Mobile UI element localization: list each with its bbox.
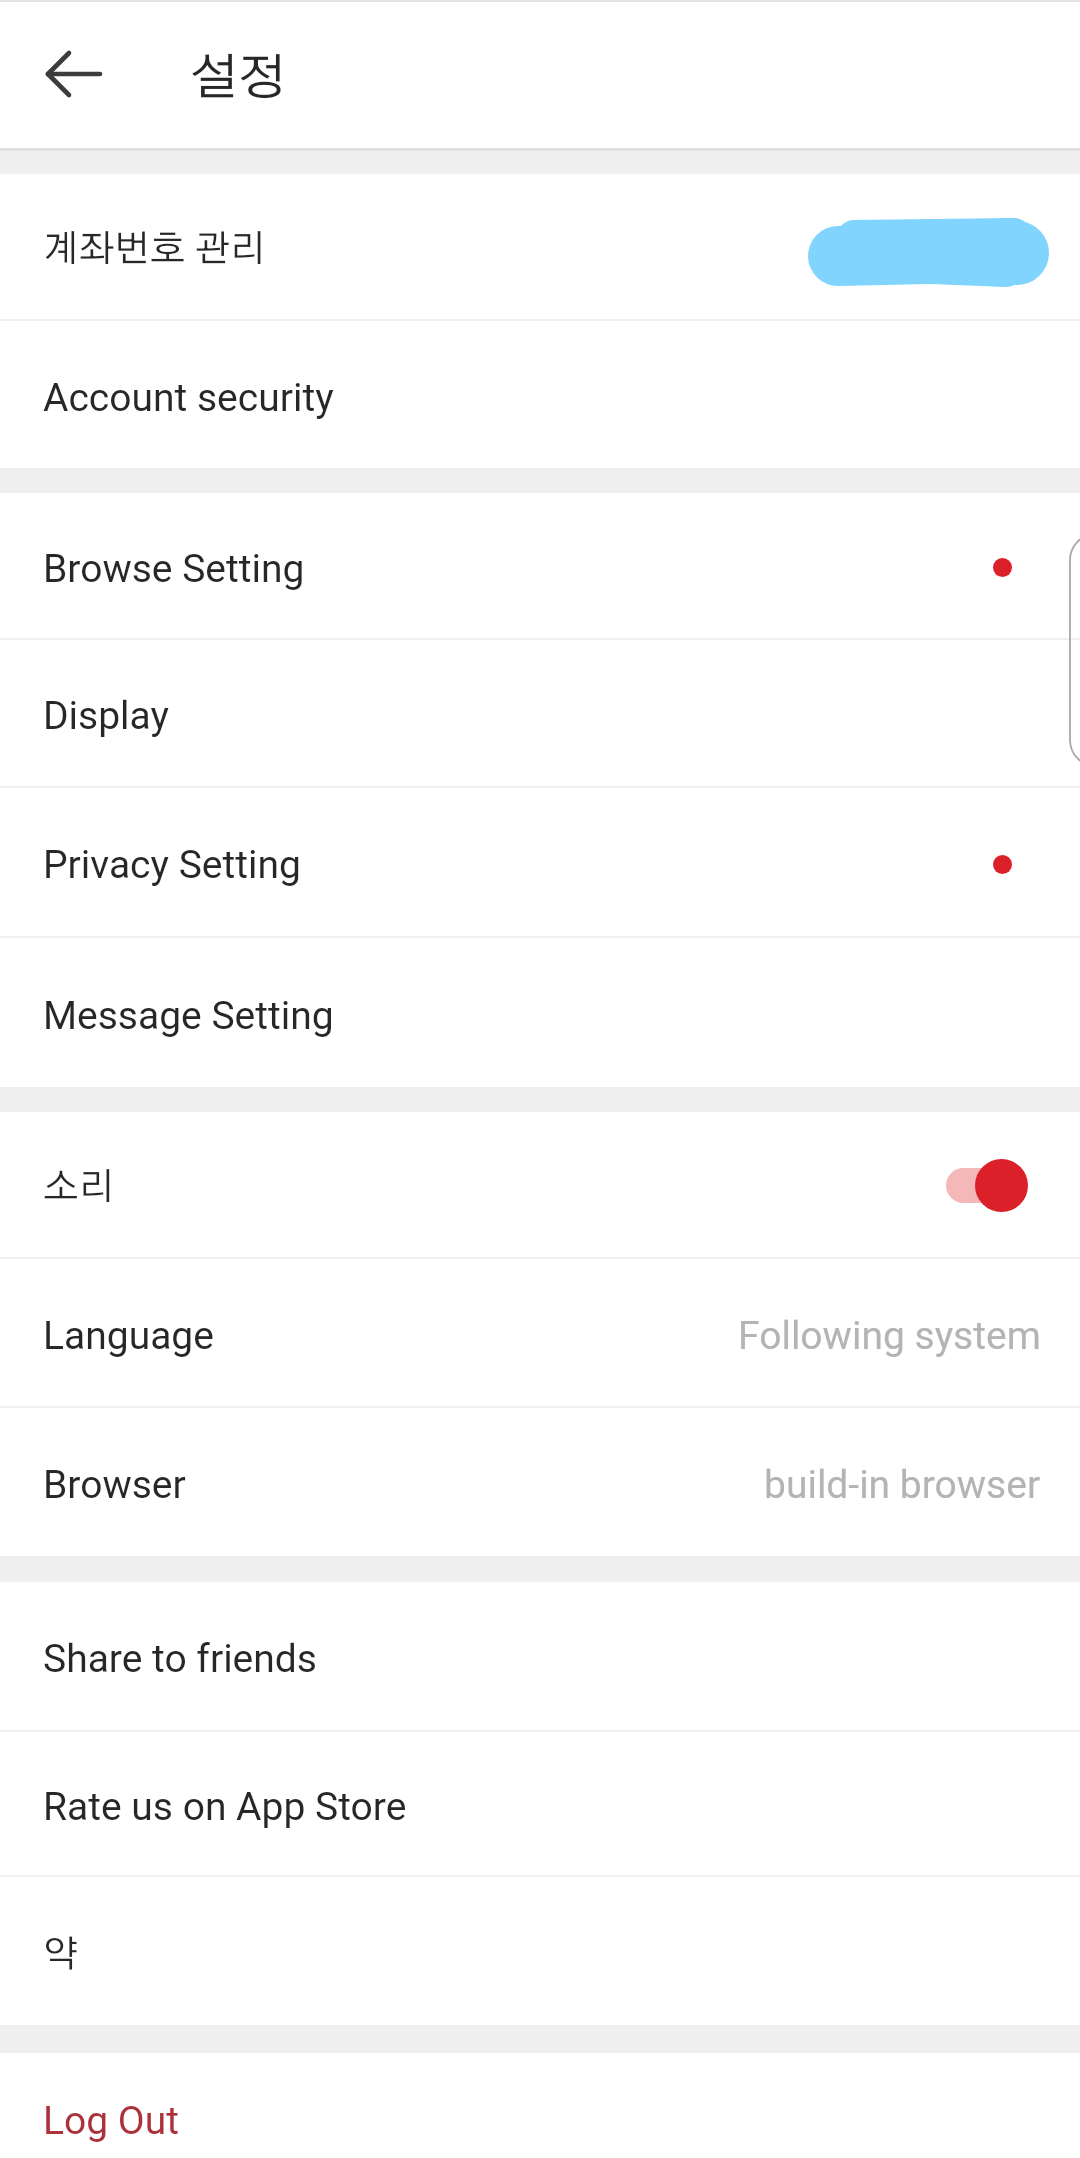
staticText: 소리 [43,1169,115,1206]
button[interactable]: Browser [0,1408,1080,1556]
button[interactable]: Share to friends [0,1582,1080,1730]
staticText: Rate us on App Store [43,1784,407,1830]
button[interactable]: 계좌번호 관리 [0,174,1080,319]
staticText: Privacy Setting [43,842,301,888]
staticText: Message Setting [43,993,334,1039]
button[interactable]: Language [0,1259,1080,1406]
staticText: Browse Setting [43,546,305,592]
button[interactable]: Account security [0,321,1080,468]
button[interactable]: Message Setting [0,938,1080,1087]
button[interactable]: Log Out [0,2053,1080,2158]
button[interactable]: 약 [0,1877,1080,2025]
button[interactable]: Privacy Setting [0,788,1080,936]
staticText: Account security [43,375,334,421]
staticText: 계좌번호 관리 [43,231,266,268]
button[interactable]: Back [24,24,124,124]
button[interactable]: Sound on [946,1154,1028,1216]
button[interactable]: Rate us on App Store [0,1732,1080,1875]
staticText: Log Out [43,2098,179,2144]
staticText: 약 [43,1936,79,1973]
staticText: Browser [43,1462,186,1508]
staticText: 설정 [190,54,287,104]
staticText: Language [43,1313,214,1359]
staticText: Following system [738,1313,1041,1359]
button[interactable]: 소리 [0,1112,1080,1257]
button[interactable]: Display [0,640,1080,786]
staticText: Display [43,693,169,739]
button[interactable]: Browse Setting [0,493,1080,638]
staticText: build-in browser [764,1462,1041,1508]
staticText: Share to friends [43,1636,317,1682]
